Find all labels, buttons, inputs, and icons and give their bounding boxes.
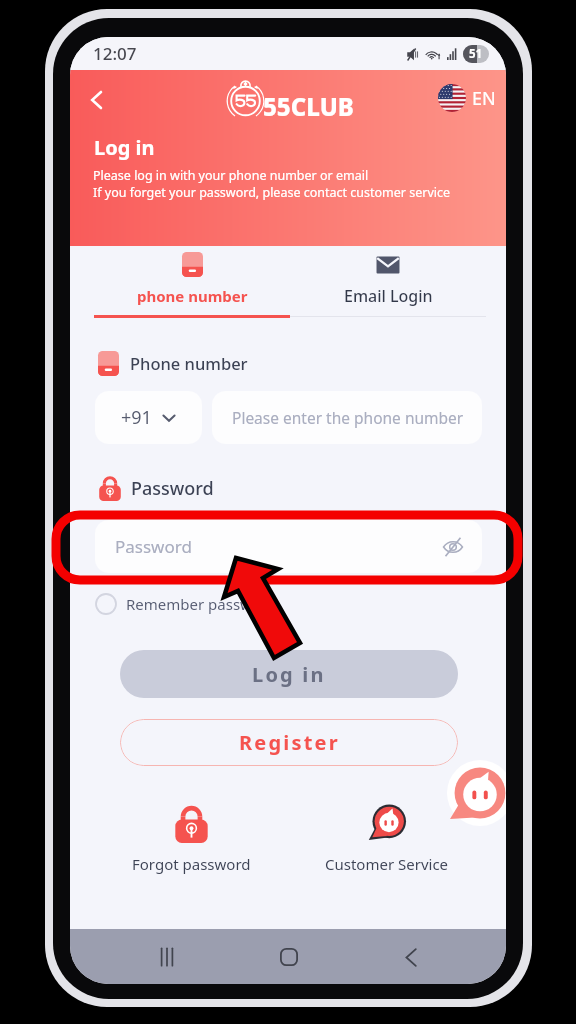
staticText: Email Login <box>344 285 433 307</box>
button[interactable]: phone number <box>94 246 290 318</box>
staticText: Customer Service <box>325 854 449 874</box>
button[interactable]: Email Login <box>290 246 486 318</box>
staticText: 55CLUB <box>263 90 354 123</box>
button[interactable]: EN <box>438 84 496 112</box>
staticText: If you forget your password, please cont… <box>93 184 451 201</box>
staticText: 12:07 <box>93 42 137 65</box>
staticText: Please enter the phone number <box>232 407 464 428</box>
button[interactable]: Back <box>389 935 433 979</box>
button[interactable]: Please enter the phone number <box>212 391 482 444</box>
staticText: Log in <box>94 134 155 161</box>
button[interactable]: Log in <box>120 650 458 698</box>
staticText: Phone number <box>130 352 248 374</box>
staticText: Password <box>131 476 214 501</box>
button[interactable]: Show password <box>440 534 466 560</box>
button[interactable]: Password <box>95 520 482 573</box>
staticText: Log in <box>252 661 326 688</box>
button[interactable]: +91 <box>95 391 202 444</box>
button[interactable]: Home <box>267 935 311 979</box>
button[interactable]: Back <box>78 81 116 119</box>
staticText: +91 <box>121 405 152 430</box>
staticText: 51 <box>469 46 483 62</box>
button[interactable]: Recents <box>145 935 189 979</box>
staticText: Please log in with your phone number or … <box>93 167 369 184</box>
staticText: Forgot password <box>132 854 251 874</box>
button[interactable]: Customer Service <box>317 804 457 874</box>
staticText: phone number <box>137 286 248 306</box>
button[interactable]: Register <box>120 719 458 766</box>
staticText: Register <box>239 729 340 756</box>
staticText: EN <box>472 86 496 111</box>
staticText: Password <box>115 535 192 558</box>
button[interactable]: Forgot password <box>121 804 261 874</box>
button[interactable]: Customer support <box>447 760 506 826</box>
button[interactable]: Remember password <box>95 593 277 615</box>
staticText: Remember password <box>126 594 277 614</box>
